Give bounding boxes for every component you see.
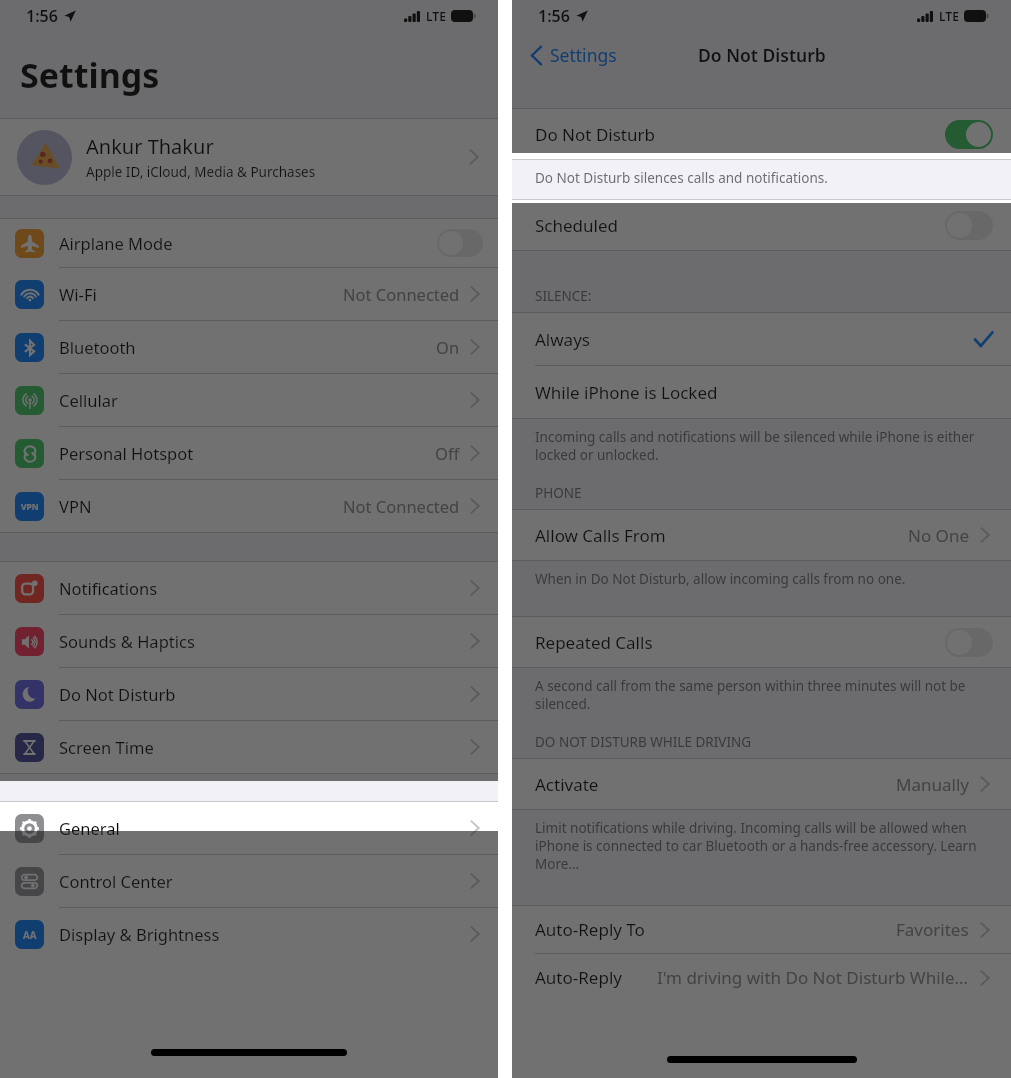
button[interactable]: Allow Calls From bbox=[512, 510, 1011, 560]
staticText: Always bbox=[535, 328, 974, 351]
staticText: I'm driving with Do Not Disturb While... bbox=[657, 966, 969, 989]
button[interactable]: Cellular bbox=[0, 374, 498, 426]
button[interactable]: Do Not Disturb bbox=[0, 668, 498, 720]
button[interactable]: Auto-Reply bbox=[512, 954, 1011, 1001]
staticText: VPN bbox=[21, 501, 39, 513]
staticText: Airplane Mode bbox=[59, 232, 437, 254]
button[interactable]: VPN bbox=[0, 480, 498, 532]
staticText: Auto-Reply bbox=[535, 966, 657, 989]
staticText: 1:56 bbox=[538, 5, 570, 27]
staticText: Auto-Reply To bbox=[535, 918, 896, 941]
staticText: While iPhone is Locked bbox=[535, 381, 993, 404]
staticText: 1:56 bbox=[26, 5, 58, 27]
staticText: AA bbox=[23, 928, 37, 942]
button[interactable]: Scheduled bbox=[512, 200, 1011, 250]
button[interactable]: Activate bbox=[512, 759, 1011, 809]
staticText: Sounds & Haptics bbox=[59, 630, 467, 652]
staticText: Display & Brightness bbox=[59, 923, 467, 945]
button[interactable]: Bluetooth bbox=[0, 321, 498, 373]
button[interactable]: Switch off bbox=[437, 229, 483, 257]
button[interactable]: General bbox=[0, 802, 498, 854]
staticText: Not Connected bbox=[343, 495, 460, 517]
button[interactable]: Switch on bbox=[945, 120, 993, 149]
staticText: Notifications bbox=[59, 577, 467, 599]
staticText: Manually bbox=[896, 773, 969, 796]
staticText: Favorites bbox=[896, 918, 969, 941]
staticText: Personal Hotspot bbox=[59, 442, 435, 464]
button[interactable]: Screen Time bbox=[0, 721, 498, 773]
staticText: PHONE bbox=[535, 484, 582, 502]
staticText: Scheduled bbox=[535, 214, 945, 237]
button[interactable]: While iPhone is Locked bbox=[512, 366, 1011, 418]
staticText: Do Not Disturb silences calls and notifi… bbox=[535, 169, 828, 187]
button[interactable]: Control Center bbox=[0, 855, 498, 907]
button[interactable]: Switch off bbox=[945, 211, 993, 240]
button[interactable]: Sounds & Haptics bbox=[0, 615, 498, 667]
staticText: General bbox=[59, 817, 467, 839]
staticText: VPN bbox=[59, 495, 343, 517]
staticText: Allow Calls From bbox=[535, 524, 908, 547]
button[interactable]: Personal Hotspot bbox=[0, 427, 498, 479]
staticText: LTE bbox=[426, 8, 446, 24]
button[interactable]: Notifications bbox=[0, 562, 498, 614]
staticText: On bbox=[436, 336, 460, 358]
staticText: Activate bbox=[535, 773, 896, 796]
staticText: Screen Time bbox=[59, 736, 467, 758]
staticText: DO NOT DISTURB WHILE DRIVING bbox=[535, 733, 752, 751]
staticText: No One bbox=[908, 524, 969, 547]
button[interactable]: Ankur Thakur bbox=[0, 119, 498, 195]
button[interactable]: Repeated Calls bbox=[512, 617, 1011, 667]
staticText: Do Not Disturb bbox=[59, 683, 467, 705]
button[interactable]: Airplane Mode bbox=[0, 219, 498, 267]
staticText: Settings bbox=[550, 43, 617, 67]
staticText: Bluetooth bbox=[59, 336, 436, 358]
staticText: Do Not Disturb bbox=[535, 123, 945, 146]
button[interactable]: Settings bbox=[524, 37, 623, 73]
staticText: Control Center bbox=[59, 870, 467, 892]
button[interactable]: AA bbox=[0, 908, 498, 960]
button[interactable]: Do Not Disturb bbox=[512, 109, 1011, 159]
button[interactable]: Auto-Reply To bbox=[512, 906, 1011, 953]
staticText: Do Not Disturb bbox=[698, 43, 826, 67]
staticText: Off bbox=[435, 442, 460, 464]
staticText: SILENCE: bbox=[535, 287, 592, 305]
staticText: Apple ID, iCloud, Media & Purchases bbox=[86, 163, 316, 181]
staticText: Not Connected bbox=[343, 283, 460, 305]
button[interactable]: Switch off bbox=[945, 628, 993, 657]
staticText: LTE bbox=[939, 8, 959, 24]
button[interactable]: Always bbox=[512, 313, 1011, 365]
staticText: Settings bbox=[20, 52, 160, 98]
staticText: Repeated Calls bbox=[535, 631, 945, 654]
staticText: Incoming calls and notifications will be… bbox=[535, 428, 988, 464]
button[interactable]: Wi-Fi bbox=[0, 268, 498, 320]
staticText: Ankur Thakur bbox=[86, 133, 214, 160]
staticText: Limit notifications while driving. Incom… bbox=[535, 819, 988, 873]
staticText: A second call from the same person withi… bbox=[535, 677, 988, 713]
staticText: When in Do Not Disturb, allow incoming c… bbox=[535, 570, 906, 588]
staticText: Wi-Fi bbox=[59, 283, 343, 305]
staticText: Cellular bbox=[59, 389, 467, 411]
